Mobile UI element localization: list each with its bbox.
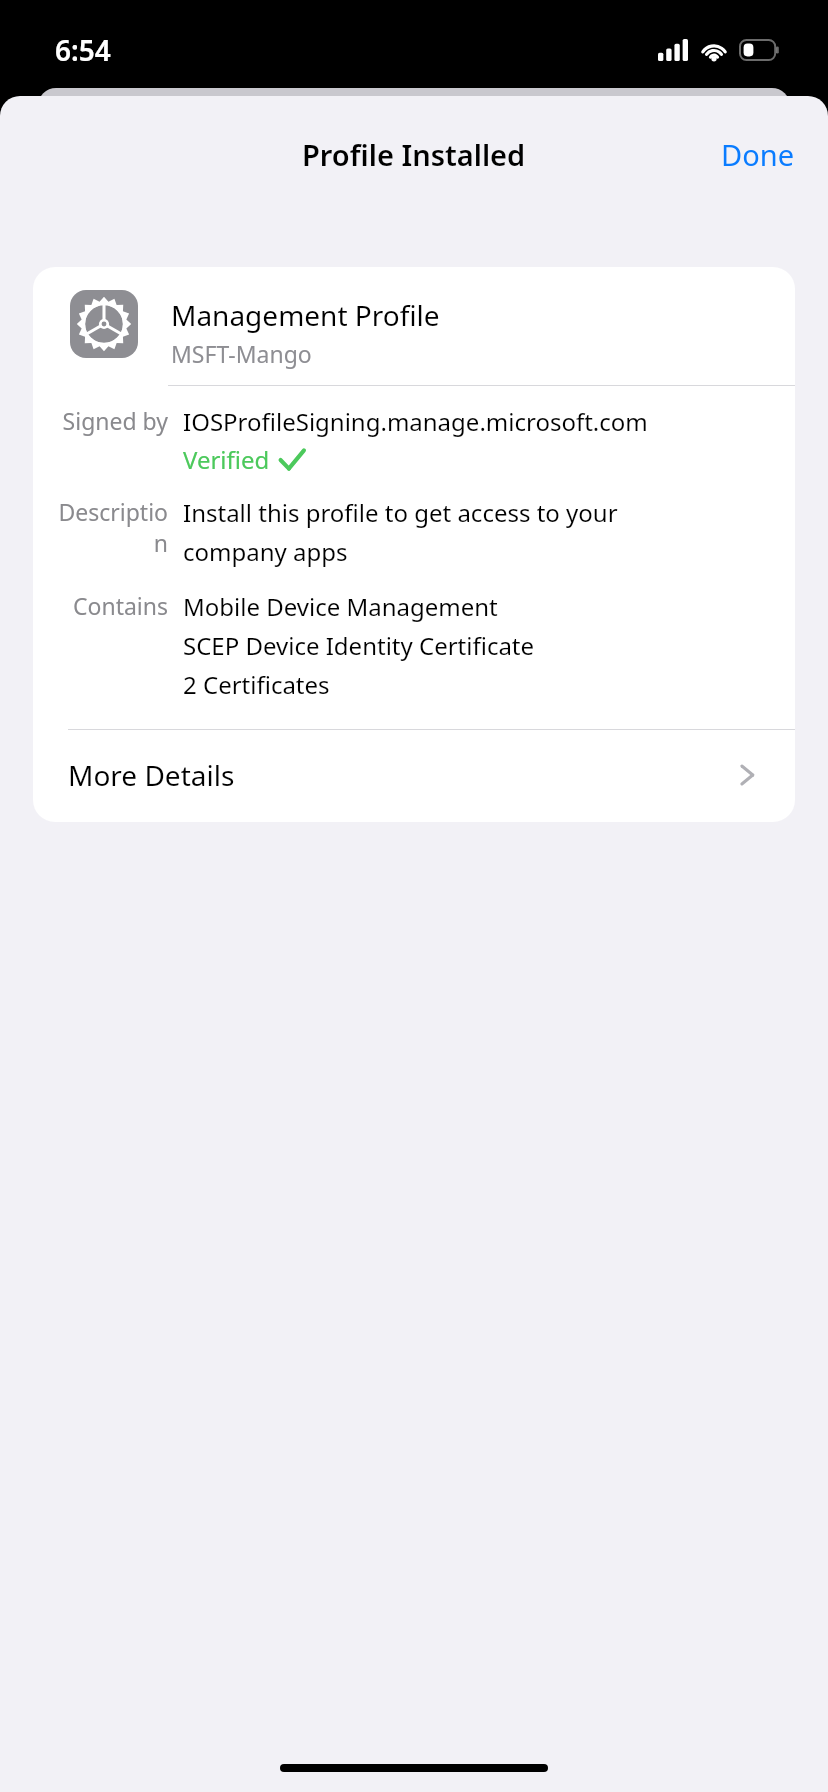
- other: More Details: [731, 759, 763, 791]
- staticText: Install this profile to get access to yo…: [183, 496, 618, 529]
- staticText: SCEP Device Identity Certificate: [183, 629, 535, 662]
- staticText: Verified: [183, 443, 270, 476]
- staticText: company apps: [183, 535, 348, 568]
- staticText: Description: [53, 496, 168, 558]
- staticText: Done: [721, 135, 794, 174]
- staticText: Management Profile: [171, 296, 440, 334]
- staticText: Signed by: [62, 405, 168, 436]
- staticText: Profile Installed: [302, 135, 526, 174]
- button[interactable]: Done: [687, 125, 828, 184]
- button[interactable]: More Details: [33, 730, 795, 822]
- staticText: MSFT-Mango: [171, 338, 312, 369]
- staticText: IOSProfileSigning.manage.microsoft.com: [183, 405, 648, 438]
- staticText: 2 Certificates: [183, 668, 330, 701]
- staticText: Contains: [72, 590, 168, 621]
- staticText: 6:54: [55, 31, 111, 69]
- staticText: More Details: [68, 756, 235, 794]
- staticText: Mobile Device Management: [183, 590, 498, 623]
